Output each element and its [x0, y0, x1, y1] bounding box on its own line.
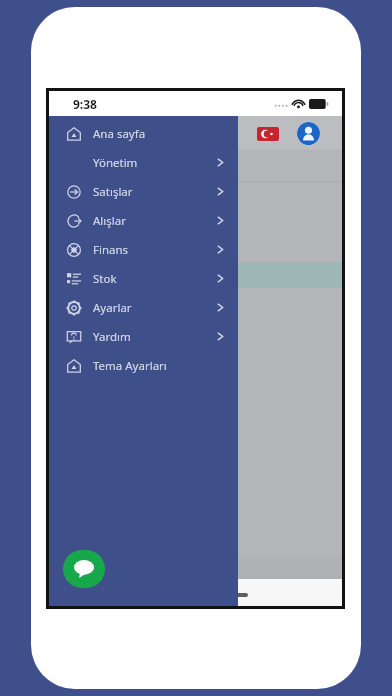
- button[interactable]: Tema Ayarları: [49, 351, 238, 380]
- button[interactable]: Kontör Al: [79, 268, 131, 283]
- button[interactable]: Language: [257, 127, 279, 141]
- staticText: Ana sayfa: [93, 126, 146, 142]
- staticText: Satışlar: [93, 184, 133, 200]
- staticText: Alışlar: [93, 213, 126, 229]
- button[interactable]: Ayarlar: [49, 293, 238, 322]
- staticText: Yönetim: [93, 155, 138, 171]
- staticText: …a görebilirsiniz: [51, 190, 136, 205]
- button[interactable]: Yardım: [49, 322, 238, 351]
- button[interactable]: Stok: [49, 264, 238, 293]
- button[interactable]: Alışlar: [49, 206, 238, 235]
- staticText: 9:38: [73, 96, 97, 112]
- staticText: Tema Ayarları: [93, 358, 167, 374]
- button[interactable]: Profile: [297, 122, 320, 145]
- button[interactable]: Ana sayfa: [49, 119, 238, 148]
- button[interactable]: Finans: [49, 235, 238, 264]
- button[interactable]: Chat: [63, 550, 105, 588]
- staticText: Yardım: [93, 329, 131, 345]
- staticText: Ayarlar: [93, 300, 132, 316]
- staticText: Finans: [93, 242, 129, 258]
- staticText: Stok: [93, 271, 117, 287]
- staticText: …lan kontör:: [49, 291, 120, 307]
- button[interactable]: Yönetim: [49, 148, 238, 177]
- button[interactable]: Satışlar: [49, 177, 238, 206]
- button[interactable]: Pick date: [113, 215, 144, 237]
